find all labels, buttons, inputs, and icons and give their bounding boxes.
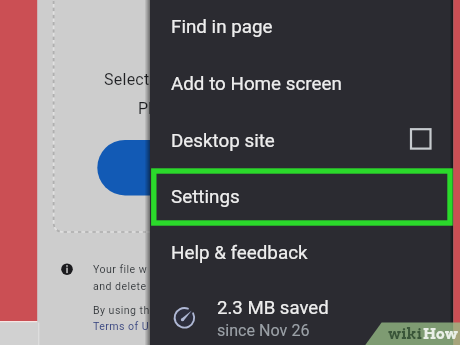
staticText: Desktop site — [171, 130, 275, 152]
staticText: wiki — [388, 325, 423, 342]
staticText: PDF — [138, 99, 150, 118]
button[interactable]: Find in page — [150, 0, 453, 47]
button[interactable]: Add to Home screen — [150, 48, 453, 104]
staticText: How — [423, 325, 458, 342]
staticText: Help & feedback — [171, 242, 308, 264]
staticText: Select — [104, 70, 150, 89]
staticText: Add to Home screen — [171, 73, 342, 95]
staticText: since Nov 26 — [217, 321, 310, 340]
staticText: Settings — [171, 186, 240, 208]
staticText: 2.3 MB saved — [217, 297, 329, 319]
button[interactable]: Choose file — [97, 140, 150, 196]
staticText: and delete — [93, 280, 147, 292]
button[interactable]: 2.3 MB saved — [150, 290, 453, 345]
button[interactable]: Help & feedback — [150, 217, 453, 273]
button[interactable]: Terms of U — [93, 321, 150, 345]
staticText: By using th — [93, 304, 150, 316]
staticText: Your file w — [93, 263, 148, 275]
staticText: Find in page — [171, 16, 273, 38]
button[interactable]: Desktop site — [150, 105, 453, 161]
button[interactable]: Settings — [150, 161, 453, 217]
staticText: Terms of U — [93, 320, 150, 332]
